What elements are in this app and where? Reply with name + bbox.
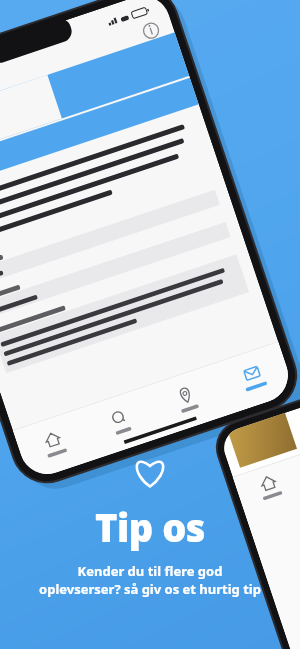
button[interactable]: Favorit hjerte xyxy=(0,455,300,493)
staticText: Kender du til flere god oplevserser? så … xyxy=(14,562,286,598)
staticText: Tip os xyxy=(0,501,300,553)
